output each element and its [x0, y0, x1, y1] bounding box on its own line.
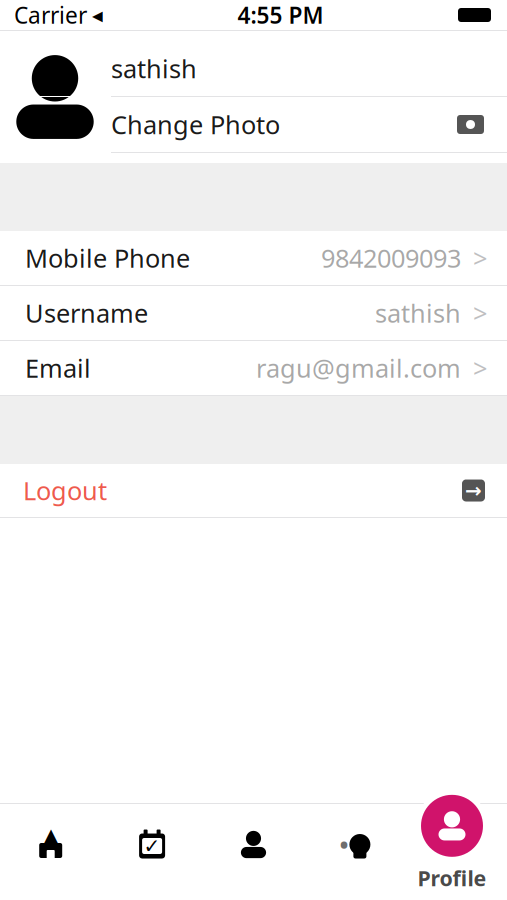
button[interactable]: Mobile Phone: [0, 231, 507, 286]
staticText: Email: [25, 351, 91, 385]
staticText: Change Photo: [111, 108, 280, 141]
staticText: →: [465, 479, 482, 502]
staticText: ◂: [92, 3, 103, 27]
staticText: >: [473, 241, 487, 275]
staticText: Mobile Phone: [25, 241, 190, 275]
staticText: 4:55 PM: [237, 0, 323, 30]
staticText: Profile: [417, 864, 486, 892]
button[interactable]: Voice: [304, 804, 406, 885]
button[interactable]: Email: [0, 341, 507, 396]
button[interactable]: Change Photo: [0, 97, 507, 152]
staticText: >: [473, 296, 487, 330]
staticText: sathish: [111, 52, 197, 85]
button[interactable]: Contacts: [203, 804, 304, 885]
staticText: ragu@gmail.com: [256, 351, 461, 385]
staticText: •: [339, 829, 348, 860]
button[interactable]: Schedule: [101, 804, 203, 885]
staticText: 9842009093: [321, 241, 461, 275]
button[interactable]: Home: [0, 804, 101, 885]
staticText: sathish: [375, 296, 461, 330]
button[interactable]: Logout: [0, 464, 507, 518]
button[interactable]: Profile: [416, 790, 488, 892]
staticText: Logout: [23, 474, 107, 507]
staticText: ✓: [144, 835, 161, 857]
button[interactable]: Username: [0, 286, 507, 341]
staticText: >: [473, 351, 487, 385]
staticText: Username: [25, 296, 148, 330]
staticText: Carrier: [14, 0, 87, 30]
staticText: ▲: [41, 823, 60, 851]
